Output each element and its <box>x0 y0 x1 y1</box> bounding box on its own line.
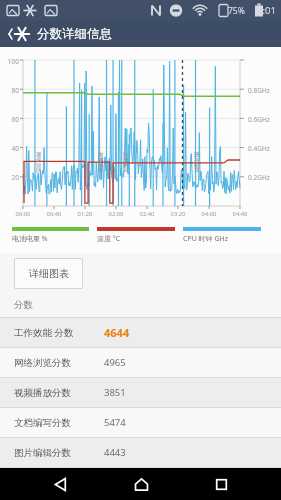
staticText: 4:01 <box>257 4 276 17</box>
staticText: 02:00 <box>105 210 127 218</box>
button[interactable]: 图片编辑分数 <box>0 438 281 467</box>
staticText: 分数详细信息 <box>37 26 112 42</box>
staticText: 00:00 <box>12 210 34 218</box>
staticText: 0.2GHz <box>248 173 270 182</box>
staticText: 00:40 <box>43 210 65 218</box>
staticText: 详细图表 <box>29 267 69 280</box>
staticText: 电池电量 % <box>12 234 48 244</box>
staticText: 文档编写 <box>122 152 129 173</box>
staticText: 分数 <box>14 299 33 311</box>
button[interactable]: Back <box>0 21 30 47</box>
staticText: 75% <box>228 5 245 17</box>
staticText: 5474 <box>104 416 126 429</box>
staticText: 图片编辑分数 <box>14 447 104 459</box>
button[interactable]: Back <box>39 468 81 500</box>
staticText: 40 <box>1 144 19 153</box>
staticText: 网络浏览 <box>35 152 42 173</box>
staticText: 4443 <box>104 446 126 459</box>
staticText: 网络浏览分数 <box>14 357 104 369</box>
staticText: 03:20 <box>167 210 189 218</box>
staticText: 4965 <box>104 356 126 369</box>
staticText: 文档编写分数 <box>14 417 104 429</box>
button[interactable]: 详细图表 <box>14 258 83 289</box>
staticText: 20 <box>1 173 19 182</box>
button[interactable]: 工作效能 分数 <box>0 318 281 347</box>
staticText: 04:00 <box>198 210 220 218</box>
button[interactable]: Recent apps <box>200 468 242 500</box>
staticText: 04:40 <box>229 210 251 218</box>
button[interactable]: 文档编写分数 <box>0 408 281 437</box>
staticText: 图片编辑 <box>193 152 200 173</box>
staticText: 视频播放分数 <box>14 387 104 399</box>
button[interactable]: 视频播放分数 <box>0 378 281 407</box>
button[interactable]: Home <box>120 468 162 500</box>
staticText: CPU 时钟 GHz <box>183 234 228 244</box>
staticText: 100 <box>1 57 19 66</box>
staticText: 01:20 <box>74 210 96 218</box>
staticText: 视频播放 <box>97 152 104 173</box>
staticText: 0.8GHz <box>248 86 270 95</box>
staticText: 3851 <box>104 386 126 399</box>
staticText: 温度 °C <box>97 234 121 244</box>
staticText: 0.4GHz <box>248 144 270 153</box>
staticText: 02:40 <box>136 210 158 218</box>
staticText: 60 <box>1 115 19 124</box>
staticText: 工作效能 分数 <box>14 326 104 339</box>
button[interactable]: 网络浏览分数 <box>0 348 281 377</box>
staticText: 4644 <box>104 325 130 340</box>
staticText: 0.6GHz <box>248 115 270 124</box>
staticText: 80 <box>1 86 19 95</box>
